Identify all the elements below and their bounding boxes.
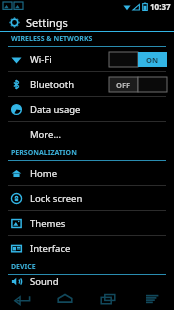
staticText: Home (30, 167, 58, 180)
button[interactable]: Bluetooth (0, 72, 174, 96)
button[interactable]: Home (0, 161, 174, 185)
staticText: Themes (30, 217, 66, 230)
button[interactable]: Lock screen (0, 186, 174, 210)
staticText: Settings (26, 15, 68, 30)
button[interactable]: Recent apps (86, 288, 130, 310)
button[interactable]: Menu (130, 288, 174, 310)
staticText: Wi-Fi (30, 53, 52, 66)
button[interactable]: Interface (0, 236, 174, 260)
staticText: Bluetooth (30, 78, 75, 91)
staticText: ON (146, 55, 159, 65)
staticText: Data usage (30, 103, 81, 116)
button[interactable]: Themes (0, 211, 174, 235)
button[interactable]: Home (43, 288, 86, 310)
button[interactable]: More… (0, 122, 174, 146)
button[interactable]: Settings (0, 13, 174, 31)
button[interactable]: Back (0, 288, 43, 310)
staticText: PERSONALIZATION (11, 148, 77, 158)
staticText: Sound (30, 275, 59, 288)
button[interactable]: Data usage (0, 97, 174, 121)
button[interactable]: Wi-Fi (0, 47, 174, 71)
staticText: More… (30, 128, 61, 141)
staticText: OFF (116, 80, 131, 90)
staticText: Interface (30, 242, 71, 255)
staticText: 10:37 (150, 1, 171, 12)
staticText: WIRELESS & NETWORKS (11, 34, 93, 44)
button[interactable]: Sound (0, 275, 174, 288)
button[interactable]: Toggle on (109, 52, 167, 67)
other: Settings (9, 17, 20, 28)
staticText: DEVICE (11, 262, 36, 272)
button[interactable]: Toggle off (109, 77, 167, 92)
staticText: Lock screen (30, 192, 83, 205)
